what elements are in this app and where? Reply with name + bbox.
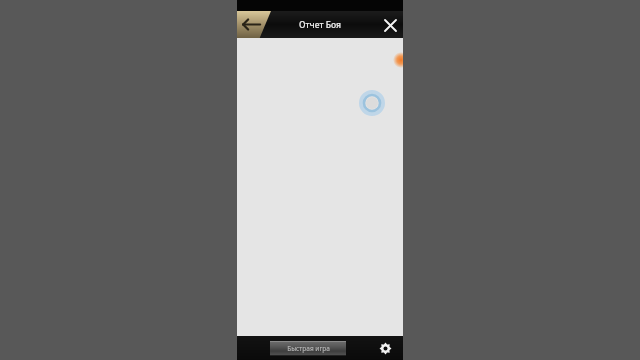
button[interactable]: Close xyxy=(377,12,403,38)
staticText: Быстрая игра xyxy=(287,344,330,353)
staticText: Отчет Боя xyxy=(299,19,341,31)
button[interactable]: Быстрая игра xyxy=(270,341,346,356)
button[interactable]: Settings xyxy=(375,338,395,358)
button[interactable]: Back xyxy=(237,11,271,38)
